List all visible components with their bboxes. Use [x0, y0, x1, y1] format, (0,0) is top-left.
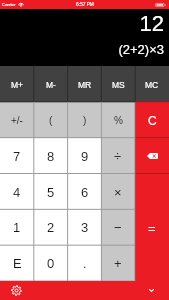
button[interactable]: 7	[0, 138, 34, 174]
button[interactable]: 5	[34, 174, 68, 210]
staticText: +	[114, 256, 122, 271]
button[interactable]: 4	[0, 174, 34, 210]
staticText: ×	[114, 185, 122, 200]
button[interactable]: Backspace	[135, 138, 169, 174]
staticText: ÷	[114, 149, 122, 164]
staticText: 7	[13, 149, 21, 164]
button[interactable]: 9	[68, 138, 102, 174]
staticText: M+	[11, 80, 24, 89]
button[interactable]: =	[135, 174, 169, 282]
button[interactable]: E	[0, 245, 34, 281]
staticText: M-	[46, 80, 56, 89]
button[interactable]: 2	[34, 209, 68, 245]
button[interactable]: .	[68, 245, 102, 281]
staticText: E	[13, 256, 22, 271]
staticText: )	[83, 115, 87, 126]
staticText: =	[148, 221, 156, 236]
button[interactable]: ÷	[101, 138, 135, 174]
staticText: MC	[145, 80, 159, 89]
staticText: 12	[139, 11, 164, 36]
button[interactable]: MC	[135, 66, 169, 102]
button[interactable]: 3	[68, 209, 102, 245]
staticText: 3	[81, 220, 89, 235]
staticText: 0	[47, 256, 55, 271]
button[interactable]: −	[101, 209, 135, 245]
button[interactable]: 8	[34, 138, 68, 174]
staticText: %	[114, 115, 123, 126]
staticText: 2	[47, 220, 55, 235]
button[interactable]: +	[101, 245, 135, 281]
button[interactable]: Settings	[0, 281, 32, 300]
staticText: +/-	[11, 115, 23, 126]
staticText: 6:57 PM	[76, 2, 94, 7]
staticText: 9	[81, 149, 89, 164]
staticText: .	[83, 256, 87, 271]
staticText: 1	[13, 220, 21, 235]
staticText: 5	[47, 185, 55, 200]
button[interactable]: (	[34, 102, 68, 138]
button[interactable]: C	[135, 102, 169, 138]
button[interactable]: 0	[34, 245, 68, 281]
staticText: 4	[13, 185, 21, 200]
button[interactable]: %	[101, 102, 135, 138]
button[interactable]: MR	[68, 66, 102, 102]
button[interactable]: )	[68, 102, 102, 138]
button[interactable]: 6	[68, 174, 102, 210]
staticText: MR	[78, 80, 92, 89]
staticText: 8	[47, 149, 55, 164]
button[interactable]: ×	[101, 174, 135, 210]
staticText: C	[148, 114, 157, 127]
button[interactable]: +/-	[0, 102, 34, 138]
button[interactable]: M+	[0, 66, 34, 102]
staticText: MS	[112, 80, 125, 89]
staticText: −	[114, 220, 122, 235]
button[interactable]: 1	[0, 209, 34, 245]
staticText: (	[49, 115, 53, 126]
button[interactable]: Collapse keypad	[134, 281, 169, 300]
staticText: (2+2)×3	[118, 42, 164, 57]
staticText: Carrier	[2, 2, 16, 7]
staticText: 6	[81, 185, 89, 200]
button[interactable]: MS	[101, 66, 135, 102]
button[interactable]: M-	[34, 66, 68, 102]
